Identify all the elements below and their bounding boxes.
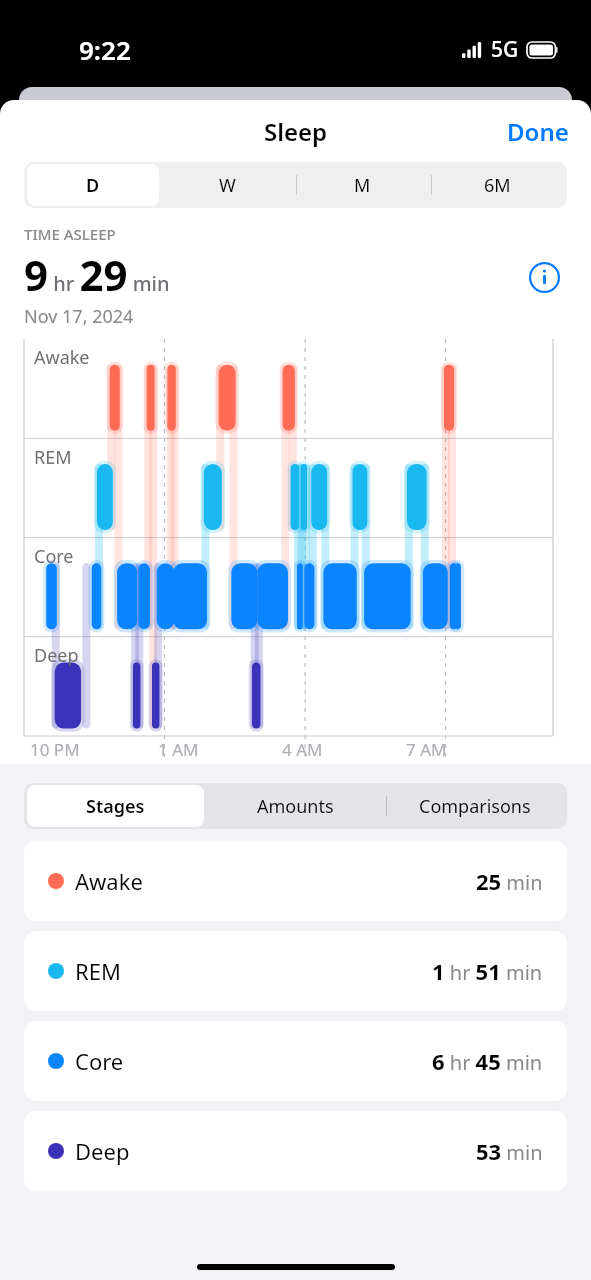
staticText: 1 AM — [158, 738, 199, 761]
staticText: Core — [75, 1046, 124, 1076]
staticText: TIME ASLEEP — [24, 224, 116, 244]
staticText: Deep — [75, 1136, 130, 1166]
staticText: Stages — [86, 794, 145, 819]
staticText: 25 min — [476, 866, 543, 896]
button[interactable]: REM — [24, 931, 567, 1011]
staticText: D — [86, 173, 100, 198]
staticText: 5G — [491, 35, 519, 64]
staticText: 7 AM — [406, 738, 447, 761]
staticText: Sleep — [264, 115, 328, 148]
button[interactable]: Awake — [24, 841, 567, 921]
button[interactable]: W — [161, 164, 294, 206]
button[interactable]: D — [27, 164, 159, 206]
staticText: Core — [34, 544, 74, 569]
staticText: W — [219, 173, 236, 198]
button[interactable]: Information — [521, 254, 567, 300]
button[interactable]: Comparisons — [386, 785, 564, 827]
staticText: REM — [34, 445, 72, 470]
button[interactable]: Stages — [27, 785, 204, 827]
button[interactable]: Done — [485, 103, 591, 160]
button[interactable]: Deep — [24, 1111, 567, 1191]
staticText: 53 min — [476, 1136, 543, 1166]
staticText: 10 PM — [30, 738, 80, 761]
staticText: Comparisons — [419, 794, 531, 819]
staticText: 1 hr 51 min — [432, 956, 543, 986]
staticText: Deep — [34, 643, 79, 668]
staticText: Awake — [75, 866, 143, 896]
button[interactable]: M — [296, 164, 429, 206]
staticText: Awake — [34, 345, 90, 370]
staticText: REM — [75, 956, 121, 986]
staticText: 6 hr 45 min — [432, 1046, 543, 1076]
staticText: Nov 17, 2024 — [24, 304, 134, 329]
staticText: Amounts — [257, 794, 334, 819]
button[interactable]: Amounts — [206, 785, 384, 827]
staticText: Done — [507, 115, 569, 148]
staticText: 4 AM — [282, 738, 323, 761]
button[interactable]: 6M — [431, 164, 564, 206]
staticText: 9 hr 29 min — [24, 246, 170, 303]
staticText: M — [354, 173, 371, 198]
button[interactable]: Core — [24, 1021, 567, 1101]
staticText: 9:22 — [79, 32, 131, 67]
staticText: 6M — [484, 173, 511, 198]
